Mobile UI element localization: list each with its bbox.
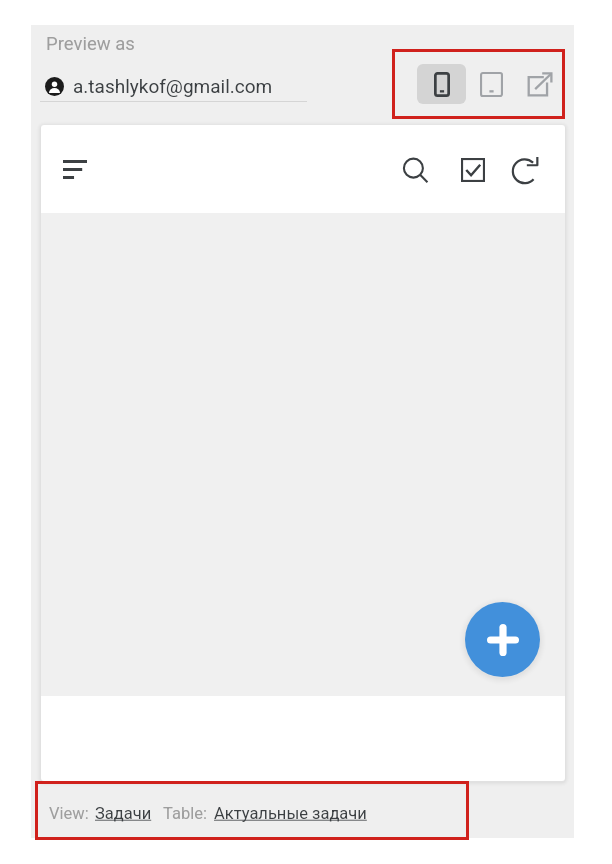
- staticText: Задачи: [95, 804, 152, 823]
- button[interactable]: Select all: [450, 147, 496, 193]
- staticText: View:: [49, 804, 89, 823]
- button[interactable]: Open in new window: [516, 64, 563, 104]
- button[interactable]: Tablet preview: [468, 64, 514, 104]
- button[interactable]: Refresh: [503, 147, 549, 193]
- button[interactable]: Sort: [53, 147, 97, 191]
- button[interactable]: Add task: [465, 602, 540, 677]
- button[interactable]: Актуальные задачи: [214, 804, 367, 823]
- staticText: Table:: [163, 804, 207, 823]
- staticText: Preview as: [46, 33, 135, 55]
- staticText: a.tashlykof@gmail.com: [73, 75, 273, 97]
- button[interactable]: Задачи: [95, 804, 152, 823]
- button[interactable]: Search: [393, 148, 439, 194]
- staticText: Актуальные задачи: [214, 804, 367, 823]
- button[interactable]: Phone preview: [417, 64, 466, 104]
